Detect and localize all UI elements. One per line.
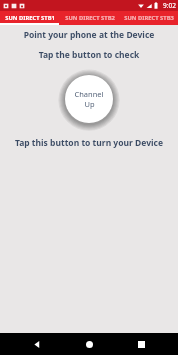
staticText: SUN DIRECT STB3 [124,14,174,22]
button[interactable]: Home [74,333,104,355]
staticText: Up [84,99,95,109]
staticText: Tap this button to turn your Device [0,137,178,149]
button[interactable]: SUN DIRECT STB1 [0,11,60,25]
staticText: 9:02 [163,1,176,10]
staticText: Tap the button to check [0,49,178,61]
staticText: Channel [74,89,104,99]
button[interactable]: SUN DIRECT STB3 [119,11,178,25]
button[interactable]: SUN DIRECT STB2 [60,11,119,25]
staticText: Point your phone at the Device [0,29,178,41]
button[interactable]: Channel [65,75,113,123]
button[interactable]: Recents [126,333,156,355]
staticText: SUN DIRECT STB2 [65,14,115,22]
staticText: SUN DIRECT STB1 [5,14,55,22]
button[interactable]: Back [22,333,52,355]
